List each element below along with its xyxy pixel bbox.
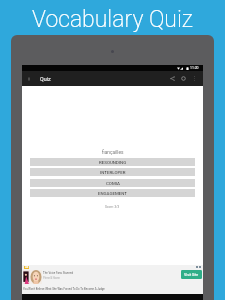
staticText: Quiz: [40, 76, 51, 82]
staticText: ENGAGEMENT: [98, 191, 127, 196]
button[interactable]: Refresh: [179, 74, 188, 83]
button[interactable]: More options: [190, 74, 199, 83]
staticText: Vocabulary Quiz: [32, 6, 193, 33]
staticText: Prime & Haven: [43, 277, 60, 280]
staticText: You Won't Believe What She Was Forced To…: [23, 287, 105, 290]
button[interactable]: INTERLOPER: [30, 168, 195, 176]
button[interactable]: Share: [168, 74, 177, 83]
staticText: INTERLOPER: [100, 170, 126, 175]
staticText: RESOUNDING: [99, 160, 127, 165]
button[interactable]: Navigation drawer: [25, 75, 33, 83]
staticText: fiançailles: [102, 150, 124, 156]
button[interactable]: RESOUNDING: [30, 158, 195, 166]
staticText: The Voice Fans Stunned: [43, 271, 73, 274]
button[interactable]: COMIA: [30, 179, 195, 187]
staticText: 11:20: [190, 66, 199, 70]
button[interactable]: Visit Site: [181, 270, 202, 279]
staticText: Visit Site: [184, 273, 199, 277]
staticText: Score: 3/3: [105, 205, 120, 209]
staticText: COMIA: [106, 181, 120, 186]
button[interactable]: ENGAGEMENT: [30, 189, 195, 197]
staticText: Ad: [25, 266, 29, 269]
